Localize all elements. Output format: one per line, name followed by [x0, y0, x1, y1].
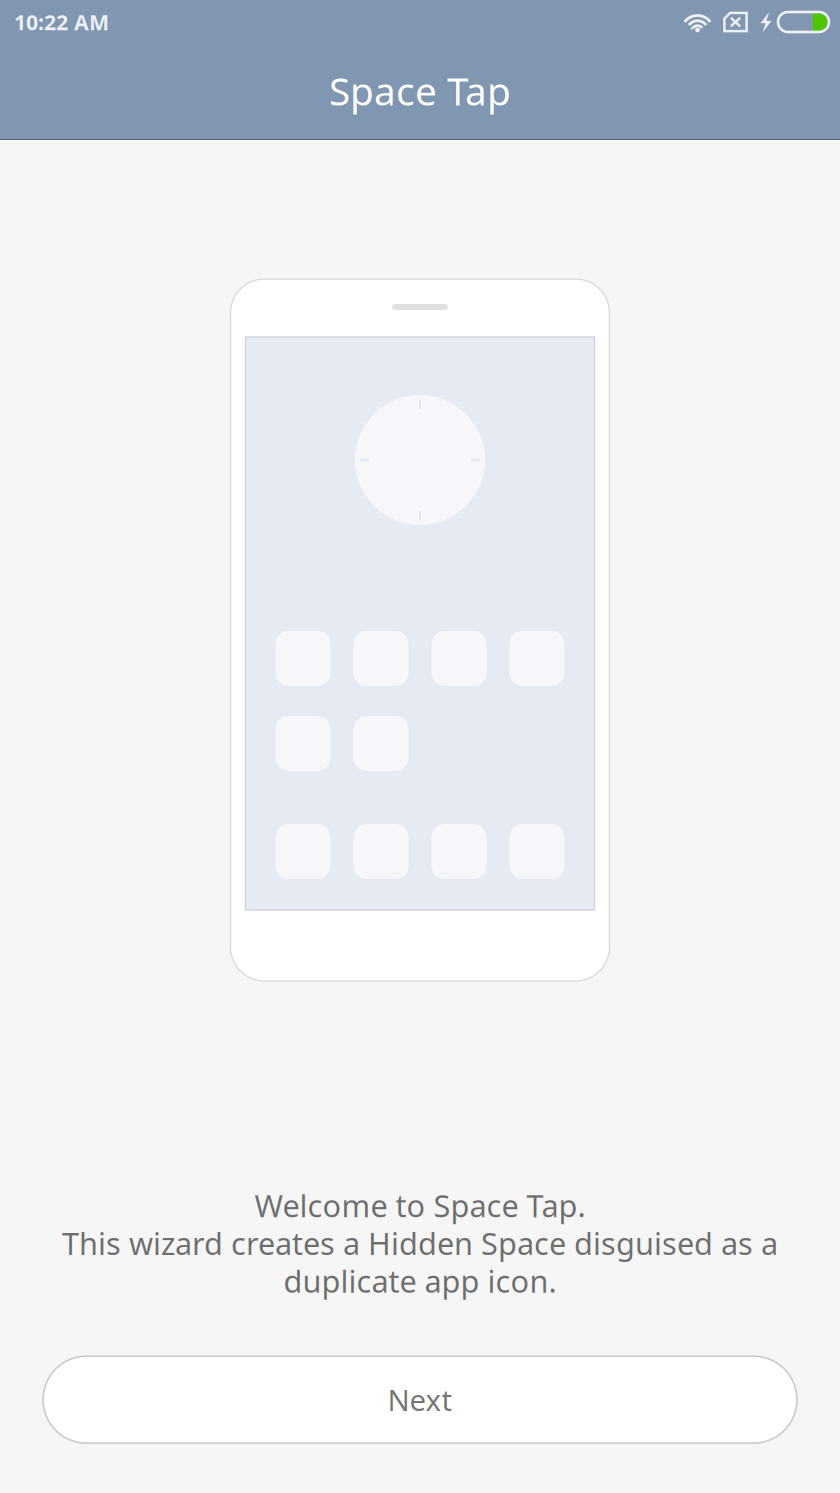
staticText: Space Tap: [329, 65, 511, 116]
staticText: Next: [387, 1380, 452, 1419]
button[interactable]: Next: [43, 1356, 797, 1443]
staticText: duplicate app icon.: [283, 1260, 556, 1301]
staticText: 10:22 AM: [14, 8, 109, 36]
staticText: Welcome to Space Tap.: [254, 1185, 585, 1226]
staticText: This wizard creates a Hidden Space disgu…: [62, 1223, 778, 1263]
